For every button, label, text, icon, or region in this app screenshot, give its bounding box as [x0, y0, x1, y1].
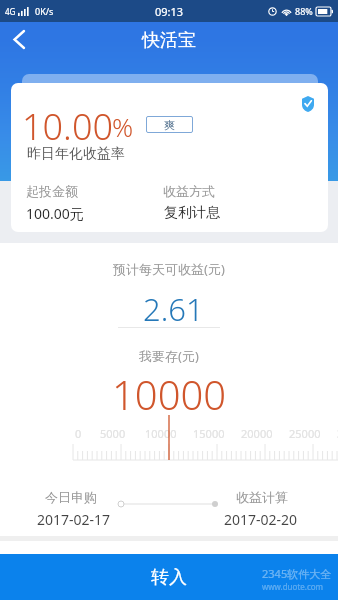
button[interactable]: Back	[1, 21, 37, 57]
staticText: 15000	[193, 426, 225, 441]
staticText: 10000	[112, 367, 227, 421]
staticText: 爽	[164, 118, 175, 132]
staticText: 09:13	[155, 4, 184, 19]
staticText: 10000	[145, 426, 177, 441]
staticText: 0	[75, 426, 82, 441]
staticText: 起投金额	[26, 183, 78, 199]
staticText: 88%	[295, 5, 313, 17]
staticText: 复利计息	[164, 204, 220, 222]
staticText: 30000	[337, 426, 338, 441]
staticText: 今日申购	[45, 489, 97, 505]
staticText: 4G	[5, 6, 16, 17]
staticText: 转入	[151, 566, 187, 589]
staticText: 快活宝	[142, 29, 196, 52]
staticText: 20000	[241, 426, 273, 441]
staticText: 2017-02-20	[224, 510, 298, 529]
staticText: 2.61	[143, 288, 204, 330]
staticText: 我要存(元)	[139, 347, 199, 365]
staticText: 预计每天可收益(元)	[113, 260, 225, 278]
staticText: 2017-02-17	[37, 510, 111, 529]
staticText: 收益方式	[163, 183, 215, 199]
staticText: 收益计算	[236, 489, 288, 505]
staticText: 25000	[289, 426, 321, 441]
staticText: 2345软件大全	[262, 566, 332, 581]
staticText: 昨日年化收益率	[27, 145, 125, 163]
staticText: 5000	[100, 426, 126, 441]
button[interactable]: 转入	[0, 554, 338, 600]
staticText: %	[112, 109, 134, 144]
button[interactable]: 爽	[146, 116, 193, 133]
staticText: 100.00元	[26, 204, 84, 223]
staticText: www.duote.com	[262, 581, 324, 592]
staticText: 10.00	[22, 102, 114, 151]
staticText: 0K/s	[35, 5, 54, 17]
